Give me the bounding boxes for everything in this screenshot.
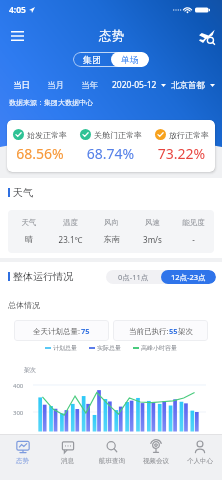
staticText: 天气 xyxy=(8,218,50,227)
staticText: 400 xyxy=(13,382,24,390)
button[interactable]: 单场 xyxy=(111,52,149,67)
staticText: 计划总量 xyxy=(53,344,77,352)
staticText: 北京首都 xyxy=(171,80,205,91)
button[interactable]: 个人中心 xyxy=(178,435,222,480)
staticText: 个人中心 xyxy=(187,457,213,465)
staticText: 高峰小时容量 xyxy=(141,344,177,352)
button[interactable]: 0点-11点 xyxy=(106,270,161,284)
button[interactable]: Flight search xyxy=(194,24,218,48)
staticText: 温度 xyxy=(50,218,91,227)
button[interactable]: 集团 xyxy=(73,52,111,67)
button[interactable]: Menu xyxy=(5,24,29,48)
button[interactable]: 当年 xyxy=(81,80,98,91)
staticText: 单场 xyxy=(121,54,139,65)
staticText: 架次 xyxy=(178,327,193,336)
staticText: - xyxy=(173,234,214,245)
staticText: 天气 xyxy=(13,186,33,199)
staticText: 视频会议 xyxy=(143,457,169,465)
staticText: 关舱门正常率 xyxy=(94,130,142,140)
staticText: 始发正常率 xyxy=(27,130,67,140)
staticText: 68.74% xyxy=(73,144,148,163)
button[interactable]: 航班查询 xyxy=(90,435,134,480)
staticText: 整体运行情况 xyxy=(13,270,73,283)
staticText: 风速 xyxy=(132,218,173,227)
staticText: 4:05 xyxy=(9,4,26,16)
staticText: 态势 xyxy=(16,457,29,465)
staticText: 放行正常率 xyxy=(169,130,209,140)
staticText: 实际总量 xyxy=(97,344,121,352)
button[interactable]: 态势 xyxy=(0,435,45,480)
staticText: 12点-23点 xyxy=(171,272,206,282)
staticText: 集团 xyxy=(83,54,101,65)
staticText: 总体情况 xyxy=(8,300,40,310)
staticText: 68.56% xyxy=(7,144,73,163)
staticText: 2020-05-12 xyxy=(112,79,157,91)
staticText: 晴 xyxy=(8,234,50,244)
staticText: 75 xyxy=(81,326,90,336)
button[interactable]: 视频会议 xyxy=(134,435,178,480)
staticText: 能见度 xyxy=(173,218,214,227)
staticText: 架次 xyxy=(24,366,36,374)
button[interactable]: 2020-05-12 xyxy=(112,79,166,91)
button[interactable]: 当月 xyxy=(47,80,64,91)
staticText: 300 xyxy=(13,409,24,417)
staticText: 23.1℃ xyxy=(50,234,91,245)
staticText: 73.22% xyxy=(148,144,215,163)
staticText: 3m/s xyxy=(132,234,173,245)
button[interactable]: 12点-23点 xyxy=(161,270,216,284)
staticText: 全天计划总量: xyxy=(33,326,81,336)
staticText: 数据来源：集团大数据中心 xyxy=(9,98,93,107)
staticText: 当前已执行: xyxy=(129,326,169,336)
button[interactable]: 北京首都 xyxy=(171,80,215,91)
staticText: 风向 xyxy=(91,218,132,227)
staticText: 东南 xyxy=(91,234,132,244)
staticText: 航班查询 xyxy=(99,457,125,465)
button[interactable]: 消息 xyxy=(45,435,90,480)
staticText: 55 xyxy=(169,326,178,336)
staticText: 消息 xyxy=(61,457,74,465)
button[interactable]: 当日 xyxy=(13,80,30,91)
staticText: 0点-11点 xyxy=(118,272,149,282)
staticText: 态势 xyxy=(99,28,124,44)
